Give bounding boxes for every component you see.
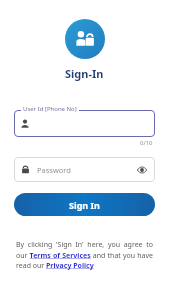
button[interactable]: Show password — [136, 164, 148, 176]
button[interactable]: Password — [14, 157, 155, 182]
button[interactable]: Sign In — [14, 193, 155, 216]
staticText: Sign-In — [65, 66, 104, 81]
staticText: By clicking 'Sign In' here, you agree to… — [16, 240, 153, 270]
staticText: User Id [Phone No] — [23, 105, 77, 113]
staticText: Password — [37, 165, 71, 175]
staticText: 0/10 — [140, 139, 153, 147]
button[interactable] — [14, 110, 155, 137]
staticText: Sign In — [69, 199, 100, 211]
